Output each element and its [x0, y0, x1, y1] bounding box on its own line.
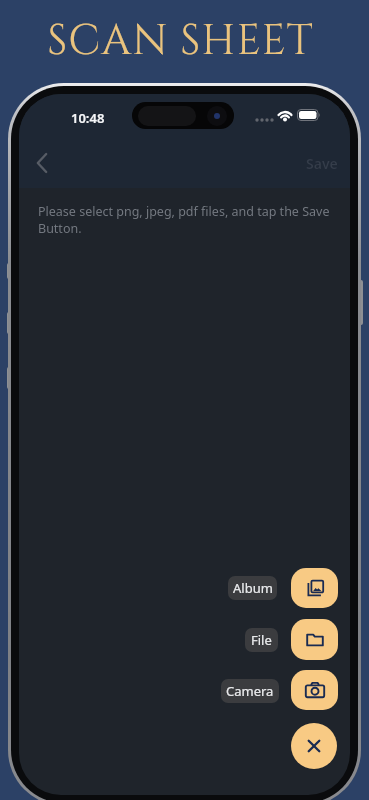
- button[interactable]: [291, 619, 338, 660]
- button[interactable]: Album: [228, 576, 277, 600]
- staticText: Save: [306, 154, 338, 173]
- staticText: 10:48: [71, 109, 105, 127]
- button[interactable]: [291, 670, 338, 710]
- button[interactable]: Camera: [221, 679, 279, 703]
- staticText: File: [251, 631, 272, 649]
- staticText: Album: [233, 579, 273, 597]
- staticText: SCAN SHEET: [0, 13, 365, 70]
- button[interactable]: [291, 568, 338, 608]
- button[interactable]: Save: [303, 152, 341, 174]
- staticText: Please select png, jpeg, pdf files, and …: [38, 203, 350, 237]
- button[interactable]: File: [245, 628, 278, 652]
- button[interactable]: [27, 147, 57, 179]
- button[interactable]: [291, 723, 337, 769]
- staticText: Camera: [226, 682, 274, 700]
